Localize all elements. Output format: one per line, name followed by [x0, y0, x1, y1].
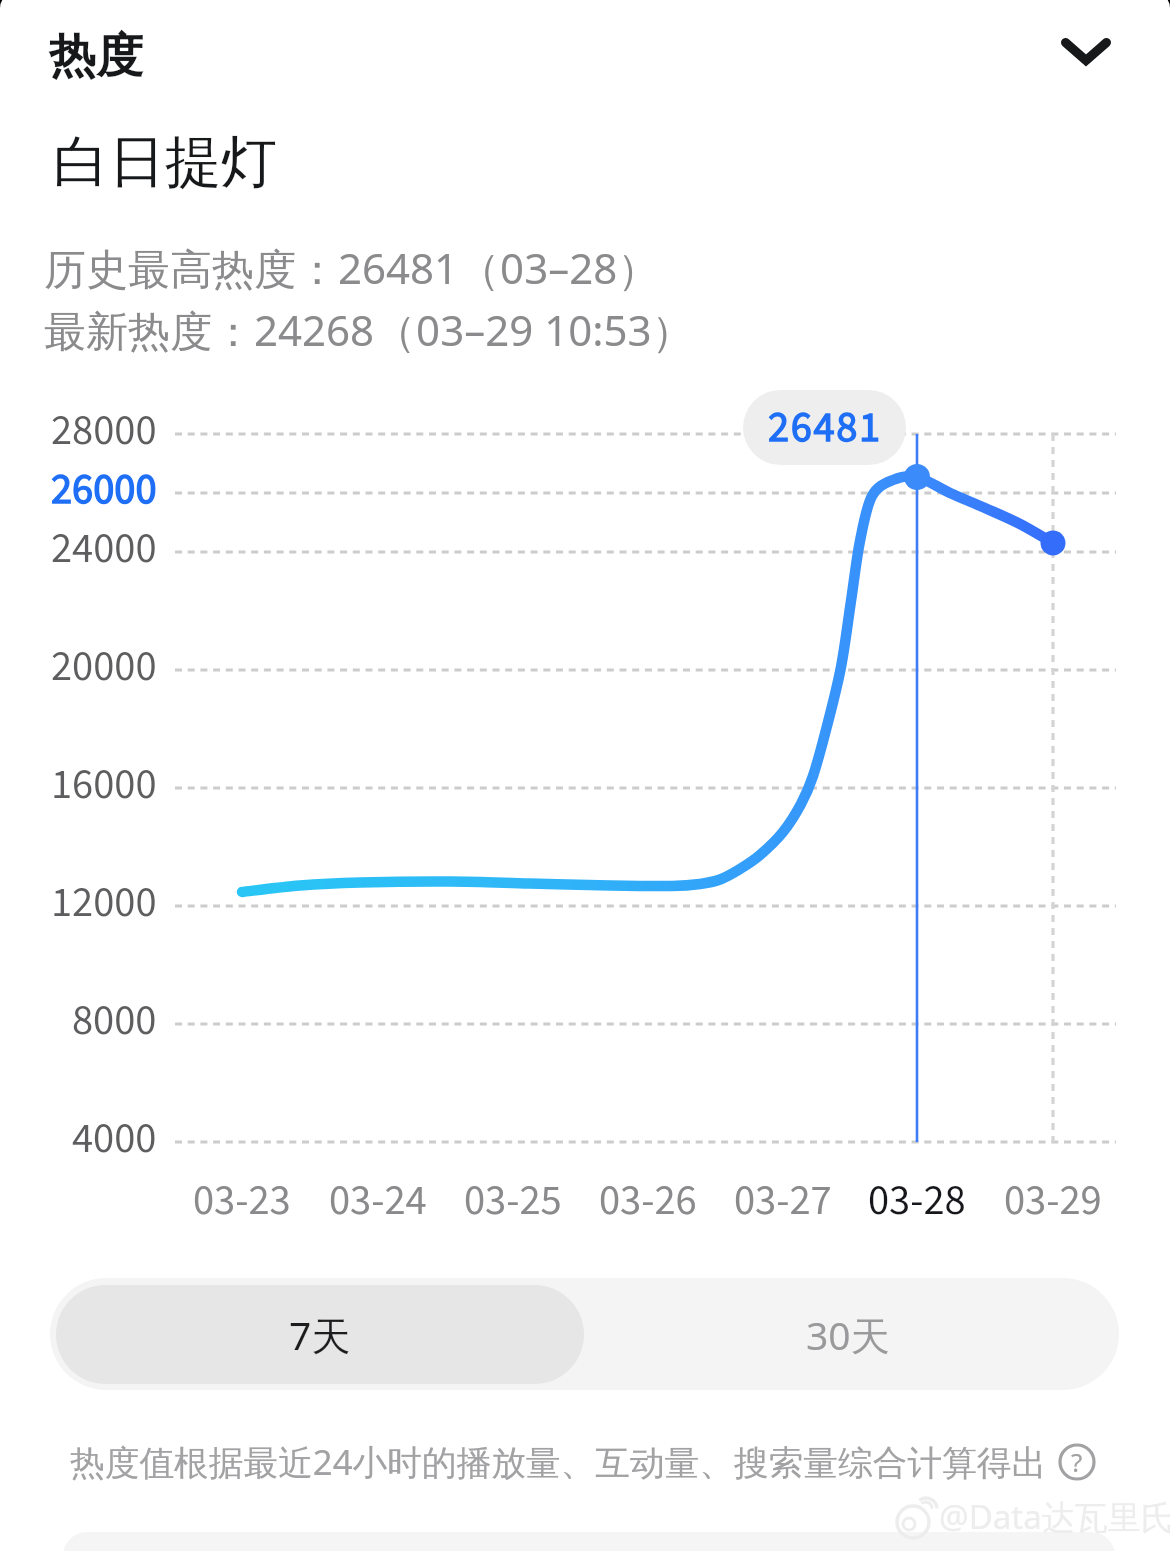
staticText: ?	[1071, 1444, 1083, 1479]
staticText: 03-28	[868, 1170, 966, 1231]
staticText: 8000	[72, 990, 157, 1051]
staticText: 12000	[51, 872, 157, 933]
staticText: 24000	[51, 518, 157, 579]
staticText: 白日提灯	[53, 127, 277, 198]
button[interactable]: 7天	[56, 1285, 584, 1384]
button[interactable]: 热度	[49, 27, 143, 86]
staticText: @Data达瓦里氏	[939, 1494, 1170, 1539]
staticText: 03-24	[329, 1170, 427, 1231]
staticText: 20000	[51, 636, 157, 697]
staticText: 热度值根据最近24小时的播放量、互动量、搜索量综合计算得出	[70, 1438, 1047, 1485]
staticText: 03-27	[734, 1170, 832, 1231]
staticText: 28000	[51, 400, 157, 461]
staticText: 最新热度：24268（03–29 10:53）	[44, 301, 694, 358]
staticText: 30天	[806, 1308, 890, 1361]
button[interactable]: Help	[1056, 1441, 1098, 1483]
staticText: 03-23	[193, 1170, 291, 1231]
staticText: 03-29	[1004, 1170, 1102, 1231]
staticText: 26481	[768, 397, 882, 458]
staticText: 03-26	[599, 1170, 697, 1231]
staticText: 7天	[289, 1308, 351, 1361]
staticText: 16000	[51, 754, 157, 815]
staticText: 26000	[51, 459, 157, 520]
button[interactable]: Collapse	[1036, 12, 1136, 92]
staticText: 历史最高热度：26481（03–28）	[44, 239, 660, 296]
staticText: 4000	[72, 1108, 157, 1169]
button[interactable]: 30天	[584, 1285, 1112, 1384]
staticText: 热度	[49, 27, 143, 86]
staticText: 03-25	[464, 1170, 562, 1231]
